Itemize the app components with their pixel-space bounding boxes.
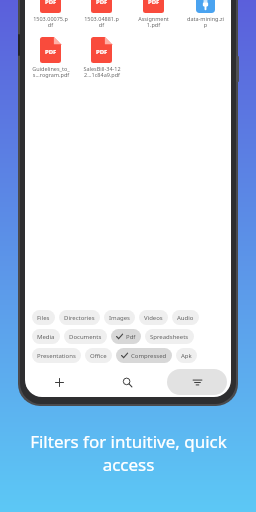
button[interactable]: Search <box>93 367 162 397</box>
staticText: Filters for intuitive, quick access <box>30 430 227 476</box>
button[interactable]: PDF <box>25 35 76 81</box>
button[interactable]: Images <box>104 310 135 325</box>
button[interactable]: Media <box>32 329 60 344</box>
staticText: Documents <box>69 333 102 341</box>
button[interactable]: PDF <box>25 0 76 31</box>
staticText: Directories <box>64 314 95 322</box>
staticText: PDF <box>45 48 57 56</box>
staticText: PDF <box>96 0 108 6</box>
staticText: 1503.00075.p df <box>33 15 68 29</box>
button[interactable]: Compressed <box>116 348 172 363</box>
staticText: data-mining.zi p <box>187 15 224 29</box>
staticText: Presentations <box>37 352 76 360</box>
button[interactable]: Files <box>32 310 55 325</box>
button[interactable]: Audio <box>172 310 199 325</box>
button[interactable]: Add <box>25 367 93 397</box>
staticText: SalesBill-34-12 2...1c84a9.pdf <box>83 65 121 79</box>
button[interactable]: Documents <box>64 329 107 344</box>
staticText: Compressed <box>131 352 167 360</box>
staticText: Guidelines_to_ s...rogram.pdf <box>32 65 70 79</box>
staticText: Pdf <box>126 333 136 341</box>
staticText: Assignment 1.pdf <box>138 15 169 29</box>
button[interactable]: Pdf <box>111 329 141 344</box>
button[interactable]: PDF <box>127 0 179 31</box>
button[interactable]: Spreadsheets <box>145 329 194 344</box>
button[interactable]: PDF <box>76 35 127 81</box>
button[interactable]: data-mining.zi p <box>179 0 231 31</box>
button[interactable]: Apk <box>176 348 197 363</box>
staticText: Files <box>37 314 50 322</box>
button[interactable]: Videos <box>139 310 168 325</box>
staticText: PDF <box>148 0 160 6</box>
button[interactable]: Presentations <box>32 348 81 363</box>
staticText: PDF <box>96 48 108 56</box>
staticText: Spreadsheets <box>150 333 189 341</box>
staticText: 1503.04881.p df <box>84 15 119 29</box>
staticText: Media <box>37 333 55 341</box>
staticText: Audio <box>177 314 194 322</box>
button[interactable]: PDF <box>76 0 127 31</box>
button[interactable]: Office <box>85 348 112 363</box>
staticText: Videos <box>144 314 163 322</box>
staticText: Apk <box>181 352 192 360</box>
button[interactable]: Directories <box>59 310 100 325</box>
staticText: Images <box>109 314 130 322</box>
staticText: Office <box>90 352 107 360</box>
button[interactable]: Filter <box>167 369 227 395</box>
staticText: PDF <box>45 0 57 6</box>
